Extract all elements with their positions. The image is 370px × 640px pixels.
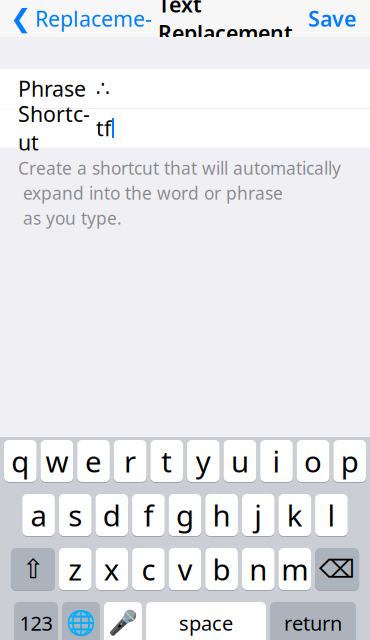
button[interactable]: e <box>77 439 110 483</box>
staticText: x <box>104 549 120 588</box>
staticText: Phrase <box>18 74 86 103</box>
staticText: ⇧ <box>22 554 44 584</box>
staticText: ∴ <box>96 76 110 101</box>
staticText: y <box>196 441 211 480</box>
button[interactable]: j <box>242 493 274 537</box>
staticText: 🎤 <box>108 609 138 637</box>
staticText: expand into the word or phrase <box>18 181 283 204</box>
button[interactable]: w <box>41 439 73 483</box>
staticText: g <box>176 495 194 534</box>
button[interactable]: y <box>187 439 220 483</box>
button[interactable]: return <box>270 601 356 640</box>
button[interactable]: Next keyboard <box>62 601 100 640</box>
button[interactable]: n <box>242 547 274 591</box>
staticText: tf <box>96 114 111 142</box>
staticText: u <box>231 441 249 480</box>
staticText: ❮ <box>10 4 31 33</box>
button[interactable]: Shift <box>11 547 55 591</box>
button[interactable]: i <box>260 439 293 483</box>
button[interactable]: d <box>95 493 128 537</box>
button[interactable]: Numbers <box>14 601 58 640</box>
staticText: return <box>284 610 342 636</box>
button[interactable]: x <box>95 547 128 591</box>
button[interactable]: o <box>297 439 329 483</box>
staticText: space <box>179 610 233 636</box>
button[interactable]: t <box>150 439 183 483</box>
staticText: 🌐 <box>66 609 96 637</box>
staticText: Text Replacement <box>158 0 293 47</box>
staticText: k <box>287 495 303 534</box>
button[interactable]: f <box>132 493 165 537</box>
staticText: 123 <box>19 610 52 636</box>
button[interactable]: b <box>205 547 238 591</box>
button[interactable]: p <box>333 439 366 483</box>
staticText: q <box>11 441 29 480</box>
button[interactable]: h <box>205 493 238 537</box>
button[interactable]: space <box>146 601 266 640</box>
button[interactable]: a <box>22 493 55 537</box>
button[interactable]: Save <box>294 0 370 39</box>
button[interactable]: m <box>278 547 311 591</box>
button[interactable]: Dictate <box>104 601 142 640</box>
staticText: v <box>177 549 192 588</box>
button[interactable]: l <box>315 493 348 537</box>
staticText: b <box>213 549 231 588</box>
button[interactable]: k <box>278 493 311 537</box>
staticText: f <box>143 495 153 534</box>
staticText: as you type. <box>18 206 122 229</box>
staticText: m <box>281 549 308 588</box>
button[interactable]: Delete <box>315 547 359 591</box>
staticText: Create a shortcut that will automaticall… <box>18 156 341 179</box>
staticText: p <box>341 441 359 480</box>
staticText: l <box>327 495 335 534</box>
staticText: d <box>103 495 121 534</box>
staticText: h <box>213 495 231 534</box>
staticText: i <box>272 441 280 480</box>
staticText: Text Replacement <box>35 0 152 61</box>
staticText: c <box>141 549 155 588</box>
button[interactable]: u <box>224 439 256 483</box>
staticText: o <box>304 441 322 480</box>
staticText: z <box>68 549 82 588</box>
staticText: n <box>249 549 267 588</box>
button[interactable]: c <box>132 547 165 591</box>
button[interactable]: g <box>169 493 201 537</box>
staticText: t <box>161 441 172 480</box>
button[interactable]: Back to Text Replacement <box>0 0 152 67</box>
staticText: Save <box>308 4 356 33</box>
staticText: a <box>31 495 47 534</box>
staticText: Shortcut <box>18 100 90 156</box>
button[interactable]: v <box>169 547 201 591</box>
button[interactable]: s <box>59 493 91 537</box>
button[interactable]: z <box>59 547 91 591</box>
staticText: s <box>68 495 82 534</box>
button[interactable]: q <box>4 439 37 483</box>
staticText: ⌫ <box>319 555 355 583</box>
staticText: w <box>45 441 68 480</box>
staticText: r <box>124 441 136 480</box>
button[interactable]: r <box>114 439 146 483</box>
staticText: e <box>85 441 102 480</box>
staticText: j <box>254 495 262 534</box>
